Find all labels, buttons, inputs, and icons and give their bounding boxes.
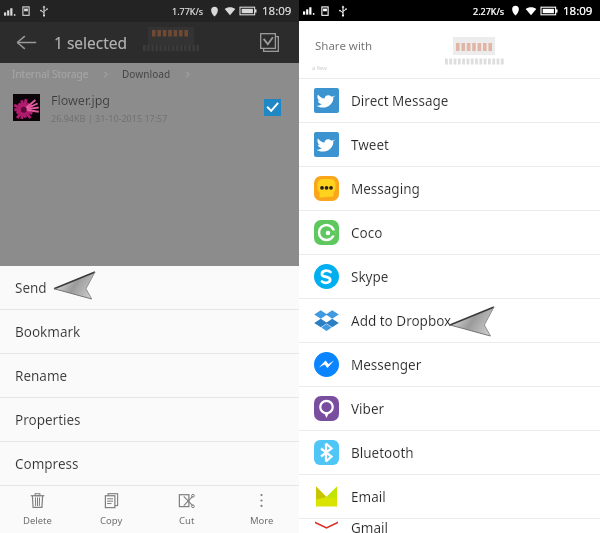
button[interactable]: Delete [0,486,74,533]
staticText: Messaging [351,180,420,198]
staticText: Delete [23,514,52,527]
staticText: Share with [315,38,373,54]
staticText: Compress [15,455,79,473]
staticText: Bookmark [15,323,81,341]
button[interactable]: More [224,486,299,533]
staticText: Gmail [351,519,388,533]
staticText: Bluetooth [351,444,414,462]
staticText: Messenger [351,356,422,374]
staticText: 1.77K/s [172,5,204,17]
button[interactable]: Messaging [299,167,600,210]
staticText: 26.94KB | 31-10-2015 17:57 [51,112,168,124]
staticText: Properties [15,411,81,429]
staticText: Cut [179,514,195,527]
staticText: Internal Storage [12,67,89,81]
button[interactable]: Rename [0,354,299,397]
button[interactable]: Viber [299,387,600,430]
button[interactable]: Bookmark [0,310,299,353]
button[interactable]: Coco [299,211,600,254]
staticText: a few [312,64,327,72]
button[interactable]: Bluetooth [299,431,600,474]
staticText: Flower.jpg [51,92,111,109]
button[interactable]: Messenger [299,343,600,386]
staticText: More [250,514,274,527]
staticText: Rename [15,367,68,385]
staticText: Email [351,488,386,506]
staticText: Viber [351,400,385,418]
button[interactable]: Back [0,22,52,63]
staticText: 1 selected [54,32,128,53]
button[interactable]: Copy [74,486,149,533]
button[interactable]: Send [0,266,299,309]
staticText: 18:09 [563,3,593,19]
staticText: Tweet [351,136,389,154]
staticText: Download [122,67,171,81]
button[interactable]: Cut [149,486,224,533]
button[interactable]: Direct Message [299,79,600,122]
staticText: Copy [100,514,123,527]
button[interactable]: Compress [0,442,299,485]
button[interactable]: Skype [299,255,600,298]
button[interactable]: Email [299,475,600,518]
staticText: Coco [351,224,383,242]
staticText: 18:09 [262,3,292,19]
staticText: Direct Message [351,92,449,110]
button[interactable]: Flower.jpg [0,85,299,130]
staticText: Skype [351,268,389,286]
staticText: Send [15,279,47,297]
button[interactable]: Tweet [299,123,600,166]
staticText: 2.27K/s [473,5,505,17]
button[interactable]: Add to Dropbox [299,299,600,342]
button[interactable]: Select all [239,22,299,63]
staticText: Add to Dropbox [351,312,452,330]
button[interactable]: Gmail [299,519,600,533]
button[interactable]: Properties [0,398,299,441]
